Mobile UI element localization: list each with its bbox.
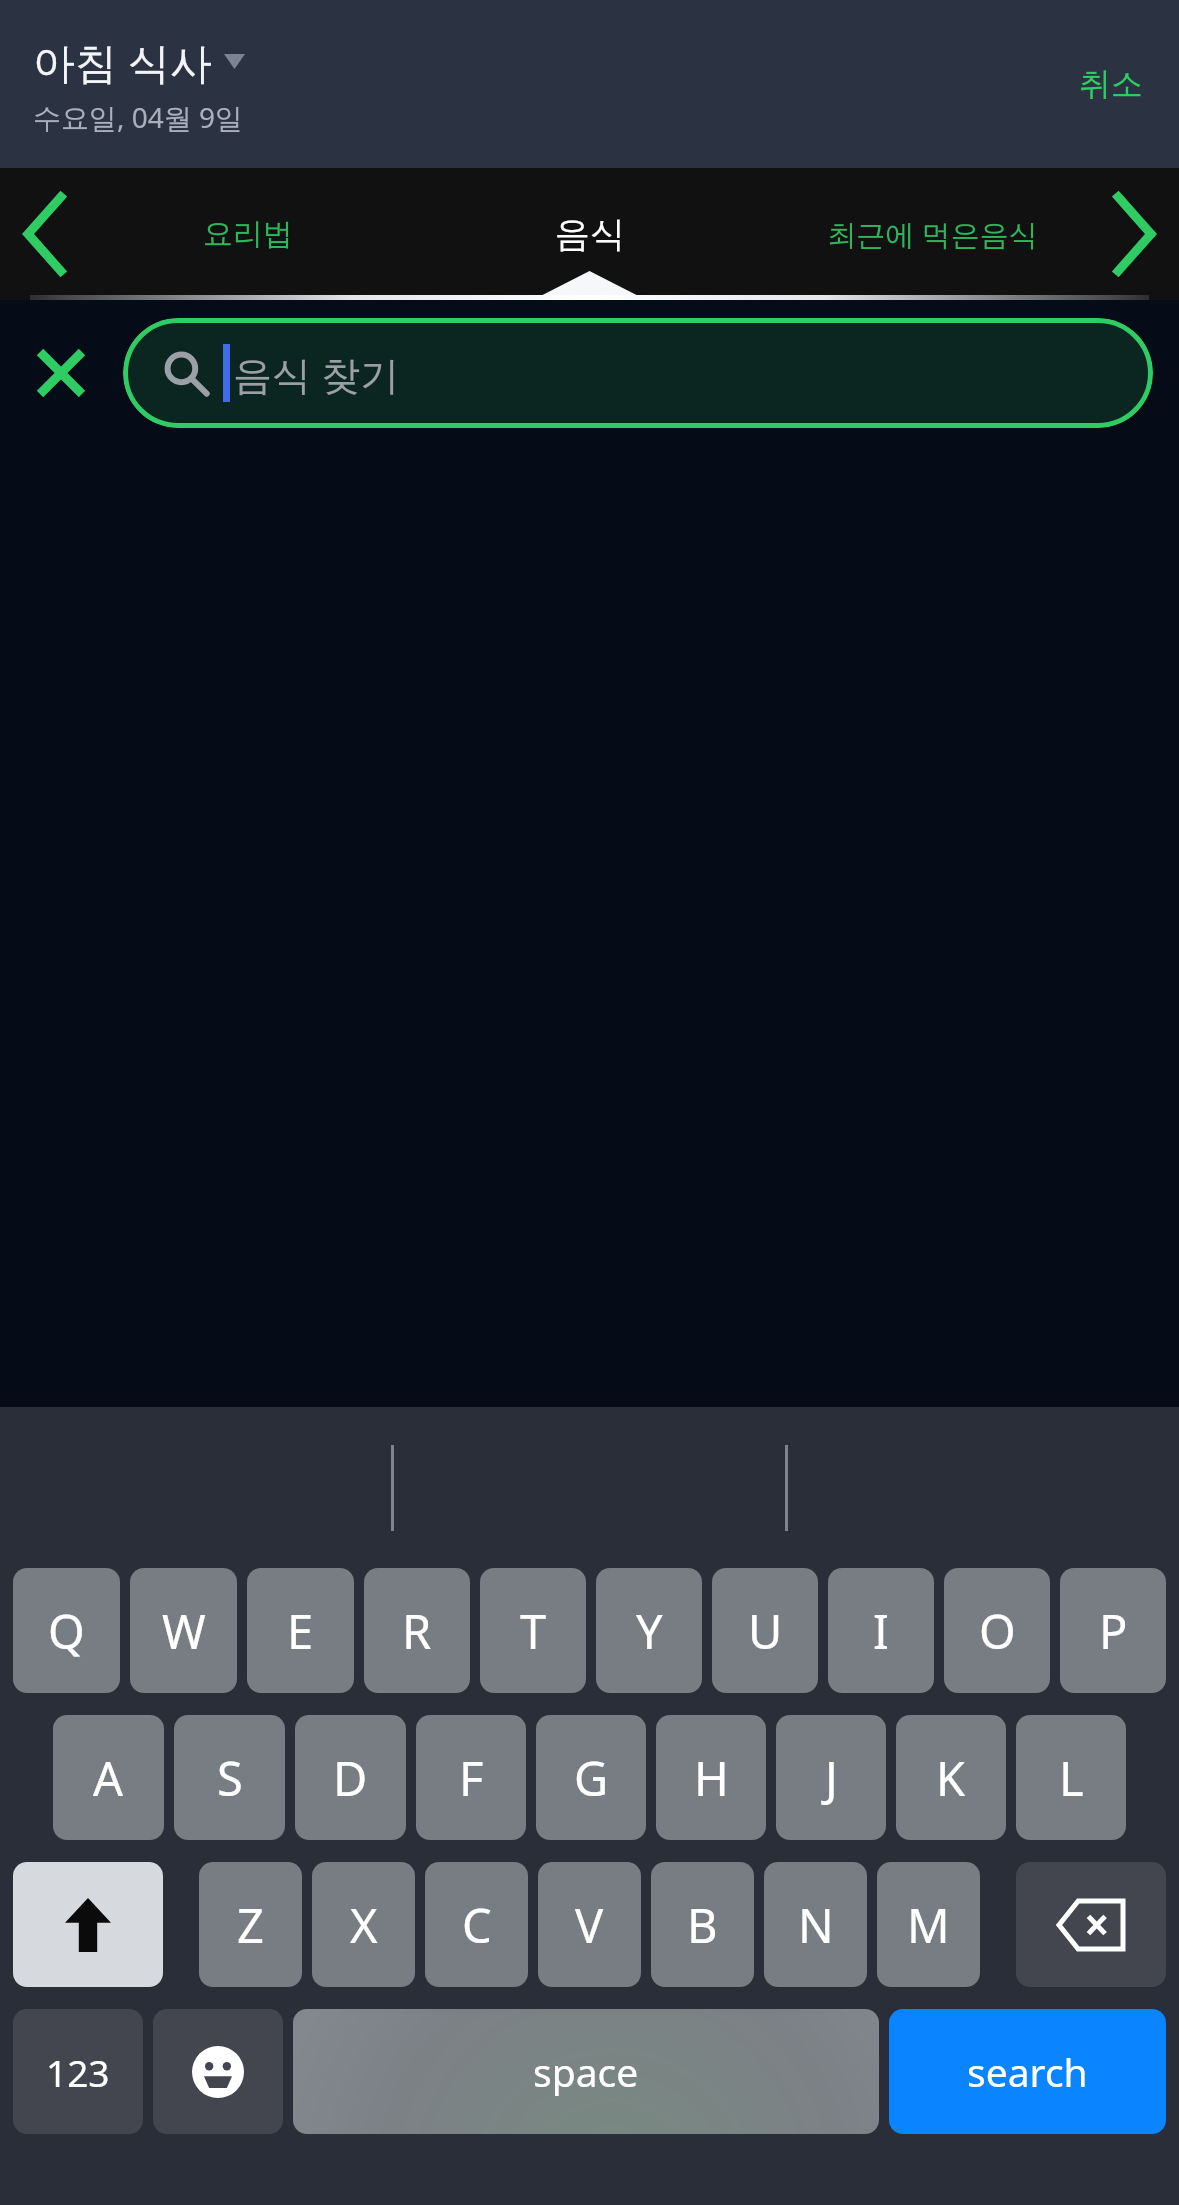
button[interactable]: Y xyxy=(596,1568,702,1693)
staticText: 아침 식사 xyxy=(33,33,212,90)
button[interactable]: Previous tab xyxy=(6,186,82,282)
button[interactable]: space xyxy=(293,2009,879,2134)
button[interactable]: P xyxy=(1060,1568,1166,1693)
button[interactable]: 음식 xyxy=(419,168,761,300)
staticText: J xyxy=(825,1746,838,1810)
button[interactable]: 음식 찾기 xyxy=(123,318,1153,428)
staticText: W xyxy=(162,1599,206,1663)
button[interactable]: V xyxy=(538,1862,641,1987)
staticText: M xyxy=(907,1893,950,1957)
button[interactable]: 취소 xyxy=(1065,52,1157,116)
staticText: F xyxy=(459,1746,484,1810)
staticText: X xyxy=(350,1893,378,1957)
button[interactable]: S xyxy=(174,1715,285,1840)
staticText: 123 xyxy=(46,2047,110,2097)
button[interactable]: R xyxy=(364,1568,470,1693)
button[interactable]: D xyxy=(295,1715,406,1840)
button[interactable]: 최근에 먹은음식 xyxy=(761,168,1103,300)
button[interactable]: H xyxy=(656,1715,766,1840)
staticText: 수요일, 04월 9일 xyxy=(33,98,244,136)
button[interactable]: 아침 식사 xyxy=(33,29,245,140)
button[interactable]: K xyxy=(896,1715,1006,1840)
staticText: Q xyxy=(48,1599,85,1663)
button[interactable]: A xyxy=(53,1715,164,1840)
staticText: R xyxy=(402,1599,432,1663)
staticText: N xyxy=(798,1893,834,1957)
button[interactable]: X xyxy=(312,1862,415,1987)
button[interactable]: I xyxy=(828,1568,934,1693)
button[interactable]: B xyxy=(651,1862,754,1987)
staticText: E xyxy=(287,1599,314,1663)
staticText: P xyxy=(1099,1599,1128,1663)
staticText: S xyxy=(217,1746,243,1810)
staticText: G xyxy=(574,1746,609,1810)
button[interactable]: O xyxy=(944,1568,1050,1693)
button[interactable]: Q xyxy=(13,1568,120,1693)
staticText: 최근에 먹은음식 xyxy=(827,214,1038,254)
staticText: search xyxy=(967,2045,1088,2098)
button[interactable]: Emoji xyxy=(153,2009,283,2134)
button[interactable]: 요리법 xyxy=(76,168,419,300)
button[interactable]: T xyxy=(480,1568,586,1693)
staticText: 요리법 xyxy=(203,215,293,253)
button[interactable]: E xyxy=(247,1568,354,1693)
staticText: I xyxy=(873,1599,889,1663)
staticText: V xyxy=(575,1893,604,1957)
staticText: K xyxy=(936,1746,966,1810)
staticText: T xyxy=(520,1599,547,1663)
staticText: C xyxy=(462,1893,492,1957)
button[interactable]: Close search xyxy=(22,334,100,412)
staticText: Z xyxy=(237,1893,264,1957)
staticText: U xyxy=(748,1599,783,1663)
staticText: B xyxy=(687,1893,718,1957)
button[interactable]: G xyxy=(536,1715,646,1840)
button[interactable]: W xyxy=(130,1568,237,1693)
button[interactable]: C xyxy=(425,1862,528,1987)
button[interactable]: J xyxy=(776,1715,886,1840)
staticText: 음식 xyxy=(555,212,625,256)
staticText: Y xyxy=(636,1599,663,1663)
button[interactable]: L xyxy=(1016,1715,1126,1840)
staticText: 취소 xyxy=(1079,64,1143,104)
staticText: space xyxy=(533,2045,639,2098)
button[interactable]: Next tab xyxy=(1097,186,1173,282)
staticText: 음식 찾기 xyxy=(233,347,400,400)
staticText: O xyxy=(979,1599,1016,1663)
staticText: L xyxy=(1059,1746,1084,1810)
staticText: A xyxy=(93,1746,124,1810)
button[interactable]: Z xyxy=(199,1862,302,1987)
button[interactable]: F xyxy=(416,1715,526,1840)
button[interactable]: search xyxy=(889,2009,1166,2134)
button[interactable]: U xyxy=(712,1568,818,1693)
button[interactable]: M xyxy=(877,1862,980,1987)
staticText: D xyxy=(333,1746,368,1810)
button[interactable]: 123 xyxy=(13,2009,143,2134)
button[interactable]: Shift xyxy=(13,1862,163,1987)
staticText: H xyxy=(694,1746,729,1810)
button[interactable]: Backspace xyxy=(1016,1862,1166,1987)
button[interactable]: N xyxy=(764,1862,867,1987)
